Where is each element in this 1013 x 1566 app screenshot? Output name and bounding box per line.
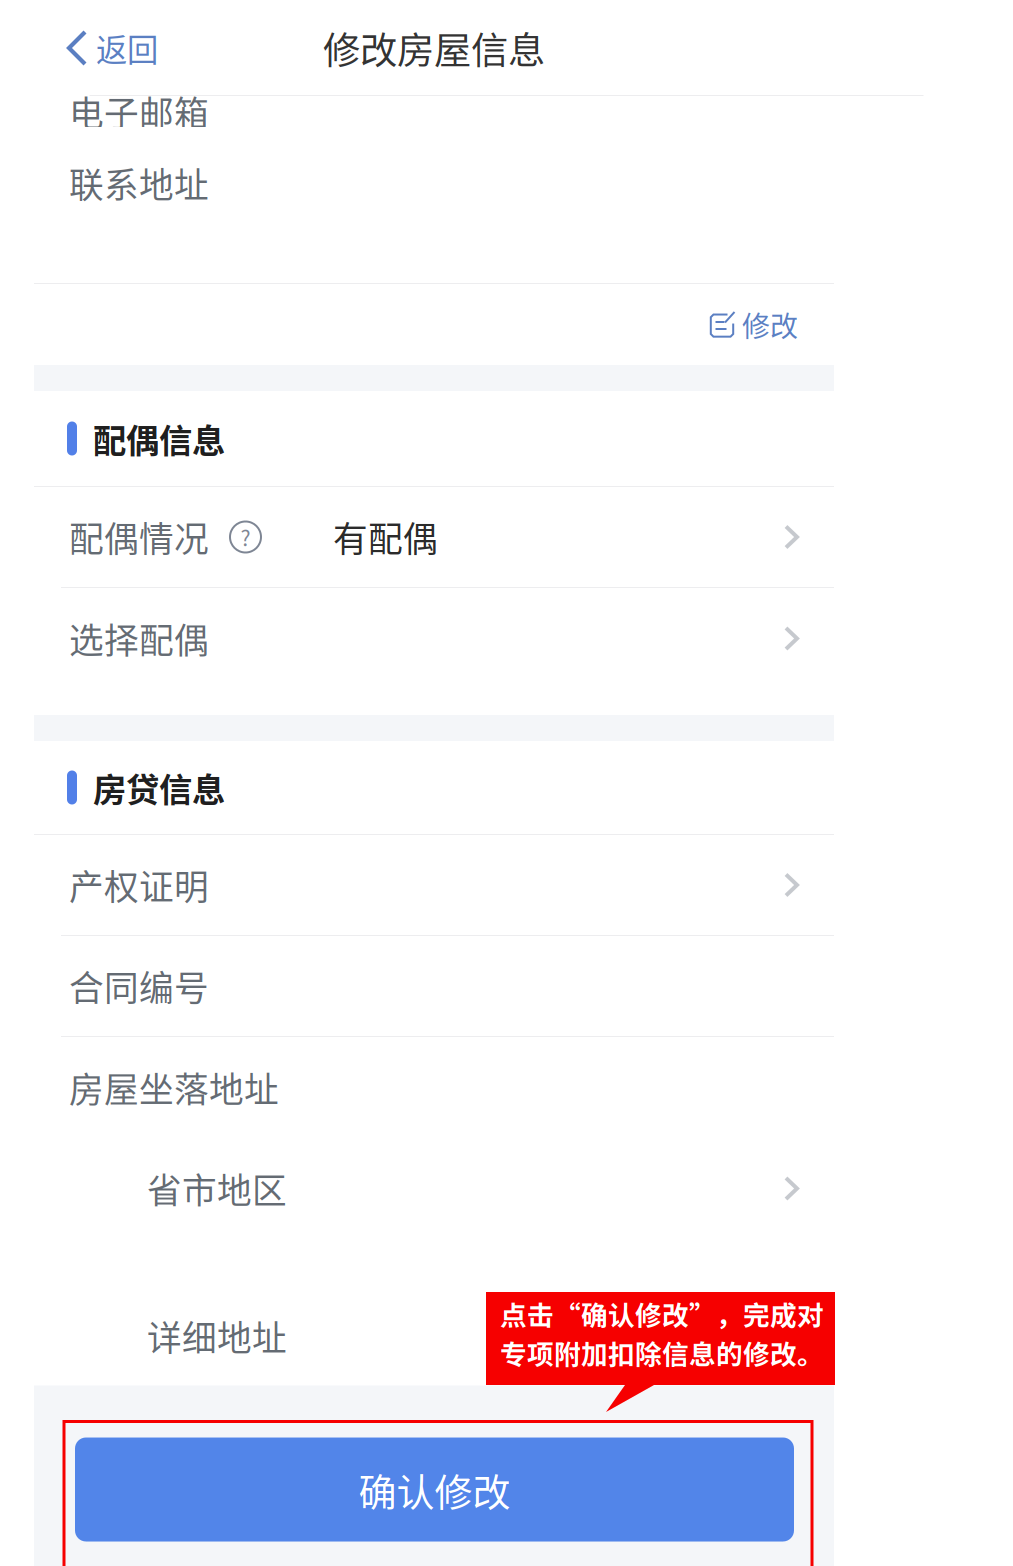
button[interactable]: 合同编号 [34,936,834,1036]
button[interactable]: 配偶情况 [34,487,834,587]
button[interactable]: 详细地址 [34,1285,834,1387]
button[interactable]: 电子邮箱 [34,96,834,127]
staticText: 合同编号 [69,961,209,1011]
staticText: 修改房屋信息 [323,21,545,75]
button[interactable]: 返回 [67,0,158,96]
staticText: 省市地区 [147,1163,287,1214]
staticText: 确认修改 [358,1462,510,1517]
staticText: 配偶信息 [93,414,225,463]
button[interactable]: 选择配偶 [34,588,834,689]
button[interactable]: 房屋坐落地址 [34,1037,834,1138]
staticText: 专项附加扣除信息的修改。 [500,1333,824,1372]
button[interactable]: 省市地区 [34,1138,834,1239]
staticText: 房屋坐落地址 [69,1062,279,1113]
staticText: 点击“确认修改”，完成对 [500,1294,824,1333]
button[interactable]: 产权证明 [34,835,834,935]
button[interactable]: 联系地址 [34,127,834,239]
staticText: 有配偶 [333,512,438,562]
button[interactable]: 修改 [709,284,798,364]
staticText: ? [240,522,250,552]
staticText: 选择配偶 [69,613,209,664]
staticText: 配偶情况 [69,512,209,562]
staticText: 电子邮箱 [69,86,209,137]
staticText: 修改 [742,304,798,345]
staticText: 房贷信息 [93,763,225,812]
button[interactable]: 确认修改 [75,1437,794,1541]
staticText: 详细地址 [147,1311,287,1361]
staticText: 产权证明 [69,860,209,910]
staticText: 联系地址 [69,158,209,208]
staticText: 返回 [96,25,158,71]
